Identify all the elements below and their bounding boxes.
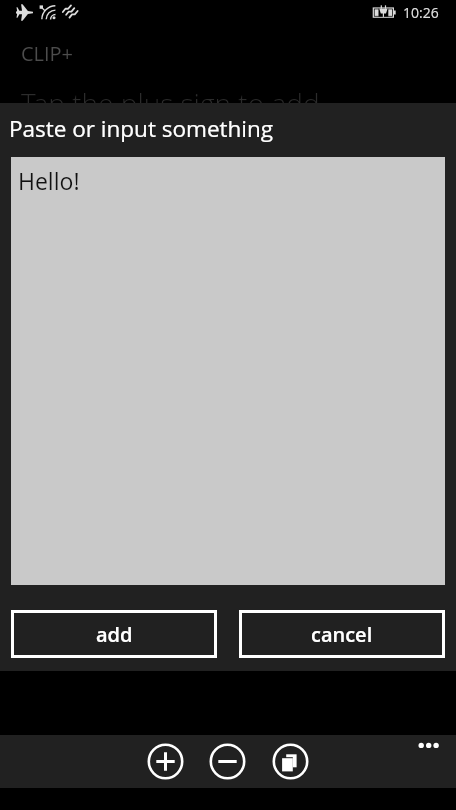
- button[interactable]: add: [11, 610, 217, 658]
- button[interactable]: Add: [145, 741, 186, 782]
- staticText: Paste or input something: [9, 113, 274, 144]
- staticText: 10:26: [403, 3, 439, 22]
- button[interactable]: More options: [410, 735, 446, 756]
- button[interactable]: Hello!: [11, 157, 445, 585]
- staticText: Tap the plus sign to add: [21, 84, 320, 122]
- staticText: add: [96, 621, 133, 648]
- staticText: Hello!: [18, 165, 80, 196]
- button[interactable]: Remove: [207, 741, 248, 782]
- staticText: cancel: [311, 621, 373, 648]
- button[interactable]: Copy: [270, 741, 311, 782]
- button[interactable]: cancel: [239, 610, 445, 658]
- staticText: CLIP+: [21, 40, 74, 67]
